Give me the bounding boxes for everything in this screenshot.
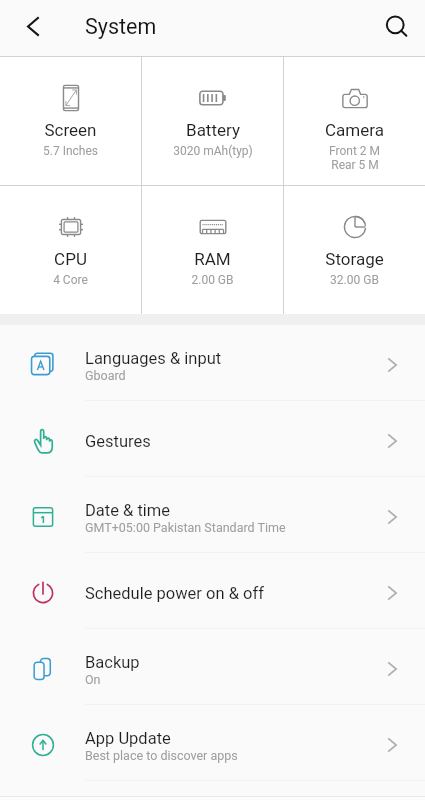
- staticText: Front 2 M: [329, 144, 380, 158]
- button[interactable]: Schedule power on & off: [0, 553, 425, 628]
- button[interactable]: Navigate up: [10, 3, 56, 49]
- staticText: Backup: [85, 653, 140, 672]
- staticText: Languages & input: [85, 349, 222, 368]
- staticText: 2.00 GB: [191, 273, 234, 287]
- staticText: Storage: [325, 249, 384, 269]
- button[interactable]: Search: [373, 3, 419, 49]
- staticText: Gestures: [85, 432, 151, 451]
- staticText: 4 Core: [53, 273, 88, 287]
- staticText: 32.00 GB: [330, 273, 379, 287]
- button[interactable]: Backup: [0, 629, 425, 704]
- staticText: Rear 5 M: [331, 158, 379, 172]
- button[interactable]: Date & time: [0, 477, 425, 552]
- staticText: CPU: [54, 249, 87, 269]
- staticText: Screen: [44, 120, 97, 140]
- staticText: GMT+05:00 Pakistan Standard Time: [85, 520, 286, 535]
- button[interactable]: Languages & input: [0, 325, 425, 400]
- staticText: Best place to discover apps: [85, 748, 238, 763]
- staticText: Schedule power on & off: [85, 584, 264, 603]
- staticText: 5.7 Inches: [43, 144, 98, 158]
- button[interactable]: RAM: [142, 186, 283, 314]
- staticText: System: [85, 14, 157, 39]
- staticText: Date & time: [85, 501, 171, 520]
- button[interactable]: Camera: [284, 57, 425, 185]
- staticText: Battery: [186, 120, 240, 140]
- button[interactable]: CPU: [0, 186, 141, 314]
- button[interactable]: Battery: [142, 57, 283, 185]
- staticText: On: [85, 672, 101, 687]
- staticText: Gboard: [85, 368, 126, 383]
- button[interactable]: App Update: [0, 705, 425, 780]
- button[interactable]: Screen: [0, 57, 141, 185]
- button[interactable]: Gestures: [0, 401, 425, 476]
- staticText: Camera: [325, 120, 384, 140]
- staticText: RAM: [194, 249, 231, 269]
- button[interactable]: Storage: [284, 186, 425, 314]
- staticText: 3020 mAh(typ): [173, 144, 253, 158]
- staticText: App Update: [85, 729, 171, 748]
